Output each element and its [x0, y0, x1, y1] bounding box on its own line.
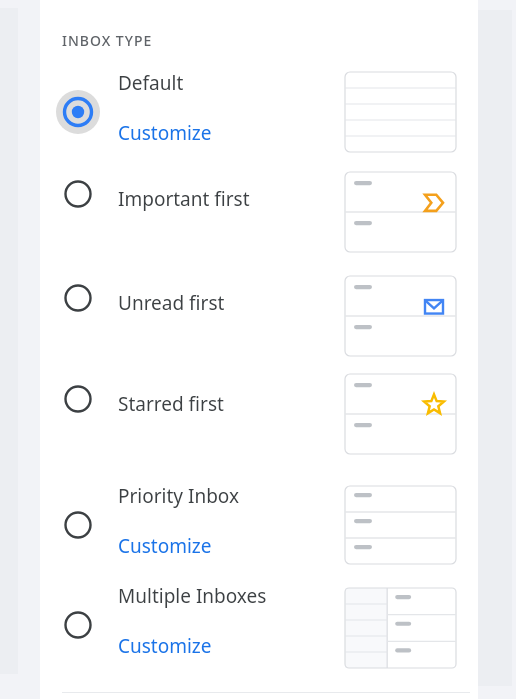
button[interactable]: Default — [46, 64, 472, 160]
button[interactable]: Unread first — [46, 268, 472, 328]
staticText: Customize — [118, 633, 212, 659]
staticText: Starred first — [118, 391, 224, 417]
button[interactable]: Important first — [46, 164, 472, 224]
button[interactable]: Priority Inbox — [46, 477, 472, 573]
staticText: Customize — [118, 120, 212, 146]
staticText: Important first — [118, 186, 250, 212]
staticText: Default — [118, 70, 184, 96]
staticText: INBOX TYPE — [62, 31, 153, 50]
staticText: Priority Inbox — [118, 483, 240, 509]
staticText: Multiple Inboxes — [118, 583, 267, 609]
button[interactable]: Multiple Inboxes — [46, 577, 472, 673]
staticText: Unread first — [118, 290, 225, 316]
button[interactable]: Starred first — [46, 369, 472, 429]
staticText: Customize — [118, 533, 212, 559]
